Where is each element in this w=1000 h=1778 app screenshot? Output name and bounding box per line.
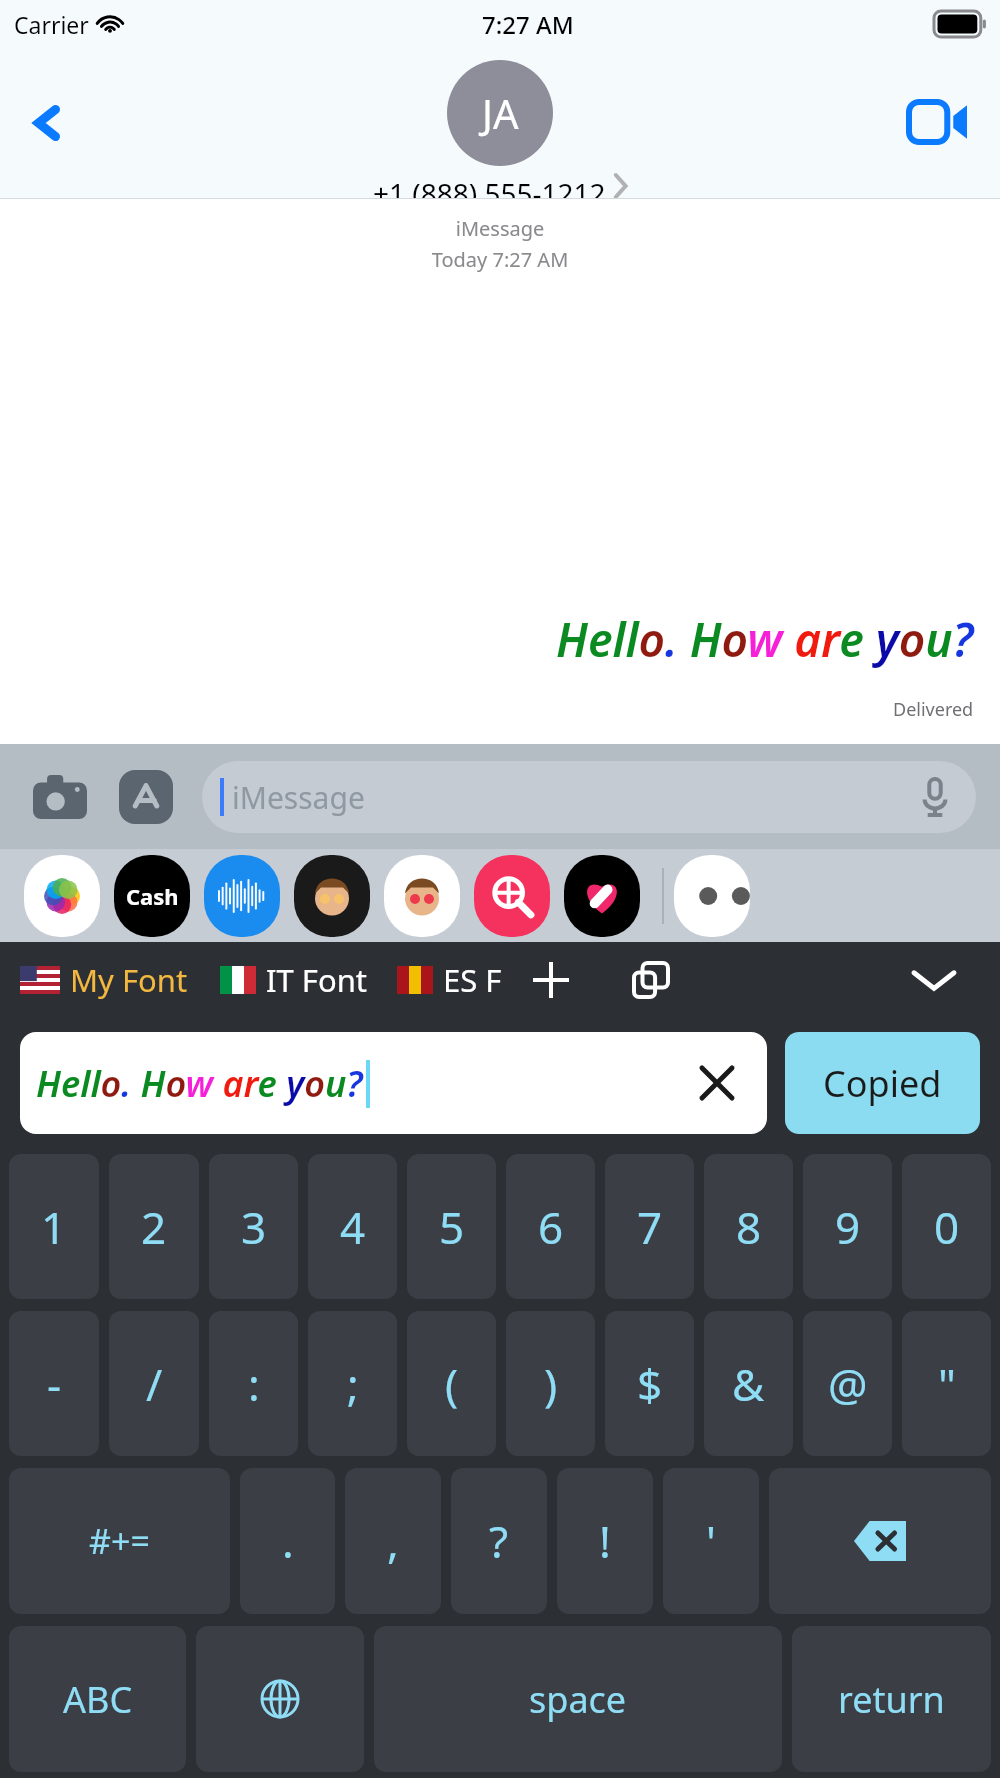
staticText: +1 (888) 555-1212 <box>373 174 606 198</box>
button[interactable]: 1 <box>9 1154 99 1299</box>
button[interactable]: " <box>902 1311 991 1456</box>
staticText: My Font <box>70 959 188 1001</box>
staticText: iMessage <box>0 215 1000 242</box>
button[interactable]: : <box>209 1311 298 1456</box>
button[interactable]: App <box>24 855 100 937</box>
button[interactable]: $ <box>605 1311 694 1456</box>
button[interactable]: #+= <box>9 1468 230 1614</box>
button[interactable]: space <box>374 1626 782 1772</box>
staticText: @ <box>828 1354 868 1414</box>
staticText: #+= <box>89 1518 150 1564</box>
button[interactable]: ( <box>407 1311 496 1456</box>
staticText: 6 <box>538 1197 564 1257</box>
button[interactable]: Copied <box>785 1032 980 1134</box>
staticText: return <box>838 1675 945 1724</box>
button[interactable]: Hello. How are you? <box>20 1032 767 1134</box>
staticText: ES F <box>443 959 502 1001</box>
button[interactable]: Camera <box>24 761 96 833</box>
staticText: ; <box>347 1354 359 1414</box>
button[interactable]: @ <box>803 1311 892 1456</box>
staticText: 0 <box>934 1197 960 1257</box>
button[interactable]: ABC <box>9 1626 186 1772</box>
staticText: / <box>146 1354 163 1414</box>
button[interactable]: App <box>564 855 640 937</box>
staticText: Hello. How are you? <box>556 608 974 671</box>
button[interactable]: ' <box>663 1468 759 1614</box>
button[interactable]: Add font <box>524 953 578 1007</box>
button[interactable]: iMessage <box>202 761 976 833</box>
staticText: space <box>529 1675 627 1724</box>
staticText: , <box>387 1511 399 1571</box>
staticText: 9 <box>835 1197 861 1257</box>
button[interactable]: ! <box>557 1468 653 1614</box>
button[interactable]: 3 <box>209 1154 298 1299</box>
staticText: 3 <box>241 1197 267 1257</box>
staticText: - <box>47 1354 62 1414</box>
button[interactable]: Clear <box>693 1059 741 1107</box>
button[interactable]: App <box>204 855 280 937</box>
button[interactable]: 4 <box>308 1154 397 1299</box>
button[interactable]: My Font <box>20 959 188 1001</box>
staticText: JA <box>482 86 519 140</box>
button[interactable]: Backspace <box>769 1468 991 1614</box>
button[interactable]: ES F <box>397 959 502 1001</box>
staticText: ! <box>599 1511 611 1571</box>
button[interactable]: 0 <box>902 1154 991 1299</box>
staticText: iMessage <box>232 777 365 818</box>
button[interactable]: return <box>792 1626 991 1772</box>
staticText: $ <box>637 1354 663 1414</box>
staticText: : <box>248 1354 260 1414</box>
button[interactable]: ? <box>451 1468 547 1614</box>
button[interactable]: JA <box>373 60 627 198</box>
button[interactable]: Back <box>18 93 78 153</box>
button[interactable]: App <box>474 855 550 937</box>
staticText: 7:27 AM <box>482 8 574 41</box>
button[interactable]: More apps <box>674 855 750 937</box>
button[interactable]: . <box>240 1468 335 1614</box>
staticText: ' <box>706 1511 716 1571</box>
staticText: " <box>938 1354 956 1414</box>
staticText: Hello. How are you? <box>36 1059 363 1108</box>
staticText: 5 <box>439 1197 465 1257</box>
button[interactable]: ; <box>308 1311 397 1456</box>
button[interactable]: - <box>9 1311 99 1456</box>
button[interactable]: Next keyboard <box>196 1626 364 1772</box>
staticText: ? <box>489 1511 509 1571</box>
staticText: Today 7:27 AM <box>0 246 1000 273</box>
button[interactable]: 6 <box>506 1154 595 1299</box>
staticText: 4 <box>340 1197 366 1257</box>
staticText: ABC <box>63 1675 133 1724</box>
button[interactable]: 2 <box>109 1154 199 1299</box>
button[interactable]: 8 <box>704 1154 793 1299</box>
button[interactable]: IT Font <box>220 959 367 1001</box>
button[interactable]: & <box>704 1311 793 1456</box>
staticText: 1 <box>41 1197 67 1257</box>
button[interactable]: FaceTime video call <box>902 86 974 158</box>
button[interactable]: 5 <box>407 1154 496 1299</box>
button[interactable]: App Store <box>110 761 182 833</box>
button[interactable]: , <box>345 1468 441 1614</box>
button[interactable]: App <box>384 855 460 937</box>
button[interactable]: / <box>109 1311 199 1456</box>
button[interactable]: Collapse <box>904 950 964 1010</box>
staticText: 2 <box>141 1197 167 1257</box>
staticText: 8 <box>736 1197 762 1257</box>
staticText: 7 <box>637 1197 663 1257</box>
button[interactable]: ) <box>506 1311 595 1456</box>
staticText: ) <box>544 1354 558 1414</box>
staticText: Cash <box>126 881 179 911</box>
staticText: Copied <box>823 1059 942 1108</box>
staticText: Carrier <box>14 9 89 40</box>
button[interactable]: 9 <box>803 1154 892 1299</box>
button[interactable]: 7 <box>605 1154 694 1299</box>
staticText: . <box>282 1511 294 1571</box>
staticText: ( <box>445 1354 459 1414</box>
staticText: & <box>732 1354 765 1414</box>
staticText: Delivered <box>893 697 974 722</box>
button[interactable]: App <box>114 855 190 937</box>
staticText: IT Font <box>266 959 367 1001</box>
button[interactable]: App <box>294 855 370 937</box>
button[interactable]: Copy <box>624 953 678 1007</box>
